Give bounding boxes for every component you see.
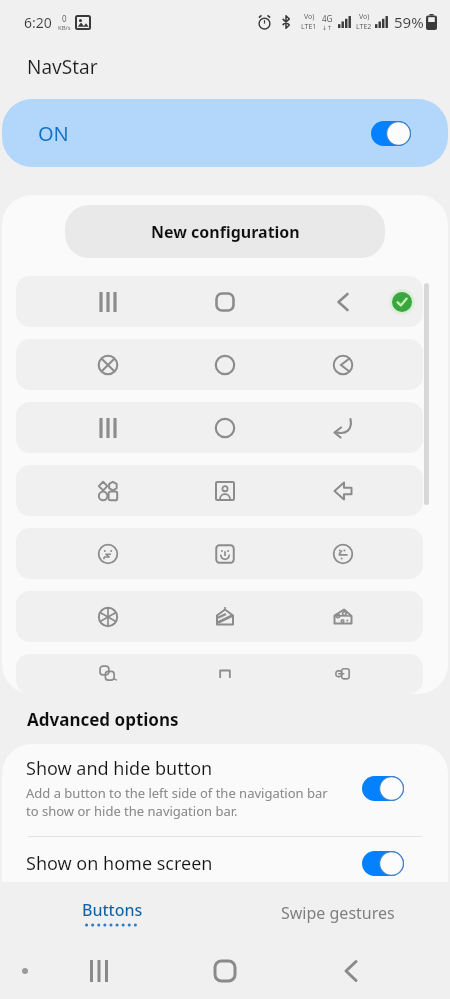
staticText: Buttons	[82, 899, 143, 921]
staticText: Show and hide button	[26, 756, 213, 781]
staticText: 0	[62, 13, 67, 24]
staticText: Vo)	[359, 12, 370, 22]
staticText: Add a button to the left side of the nav…	[26, 784, 328, 820]
staticText: ON	[38, 120, 69, 147]
button[interactable]: Home	[201, 947, 249, 995]
button[interactable]: Back	[327, 947, 375, 995]
button[interactable]	[16, 591, 423, 642]
staticText: KB/s	[58, 24, 71, 32]
button[interactable]: Recent apps	[75, 947, 123, 995]
button[interactable]: Buttons	[0, 883, 225, 943]
staticText: LTE2	[356, 22, 372, 32]
button[interactable]: New configuration	[65, 205, 385, 258]
button[interactable]: ON	[2, 99, 448, 167]
button[interactable]	[16, 276, 423, 327]
button[interactable]	[16, 402, 423, 453]
staticText: ↓↑	[322, 24, 333, 31]
staticText: NavStar	[27, 54, 98, 80]
button[interactable]: Swipe gestures	[225, 883, 450, 943]
button[interactable]	[16, 339, 423, 390]
staticText: Vo)	[304, 12, 315, 22]
button[interactable]: Show and hide button	[26, 756, 404, 820]
staticText: Swipe gestures	[281, 902, 395, 924]
button[interactable]	[16, 528, 423, 579]
staticText: Show on home screen	[26, 851, 362, 876]
button[interactable]: Show on home screen	[26, 851, 404, 876]
staticText: Advanced options	[27, 708, 179, 731]
staticText: 6:20	[24, 13, 52, 32]
button[interactable]	[16, 654, 423, 694]
staticText: 59%	[394, 12, 424, 32]
staticText: LTE1	[301, 22, 317, 32]
button[interactable]	[16, 465, 423, 516]
staticText: 4G	[322, 13, 333, 24]
staticText: New configuration	[151, 221, 300, 243]
